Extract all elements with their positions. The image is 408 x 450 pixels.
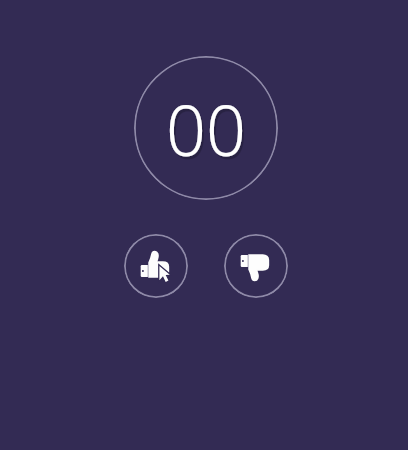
staticText: 00	[168, 84, 248, 179]
button[interactable]: Thumbs up	[124, 234, 188, 298]
staticText: 00	[166, 81, 246, 176]
button[interactable]: 00	[134, 56, 278, 200]
button[interactable]: Thumbs down	[224, 234, 288, 298]
